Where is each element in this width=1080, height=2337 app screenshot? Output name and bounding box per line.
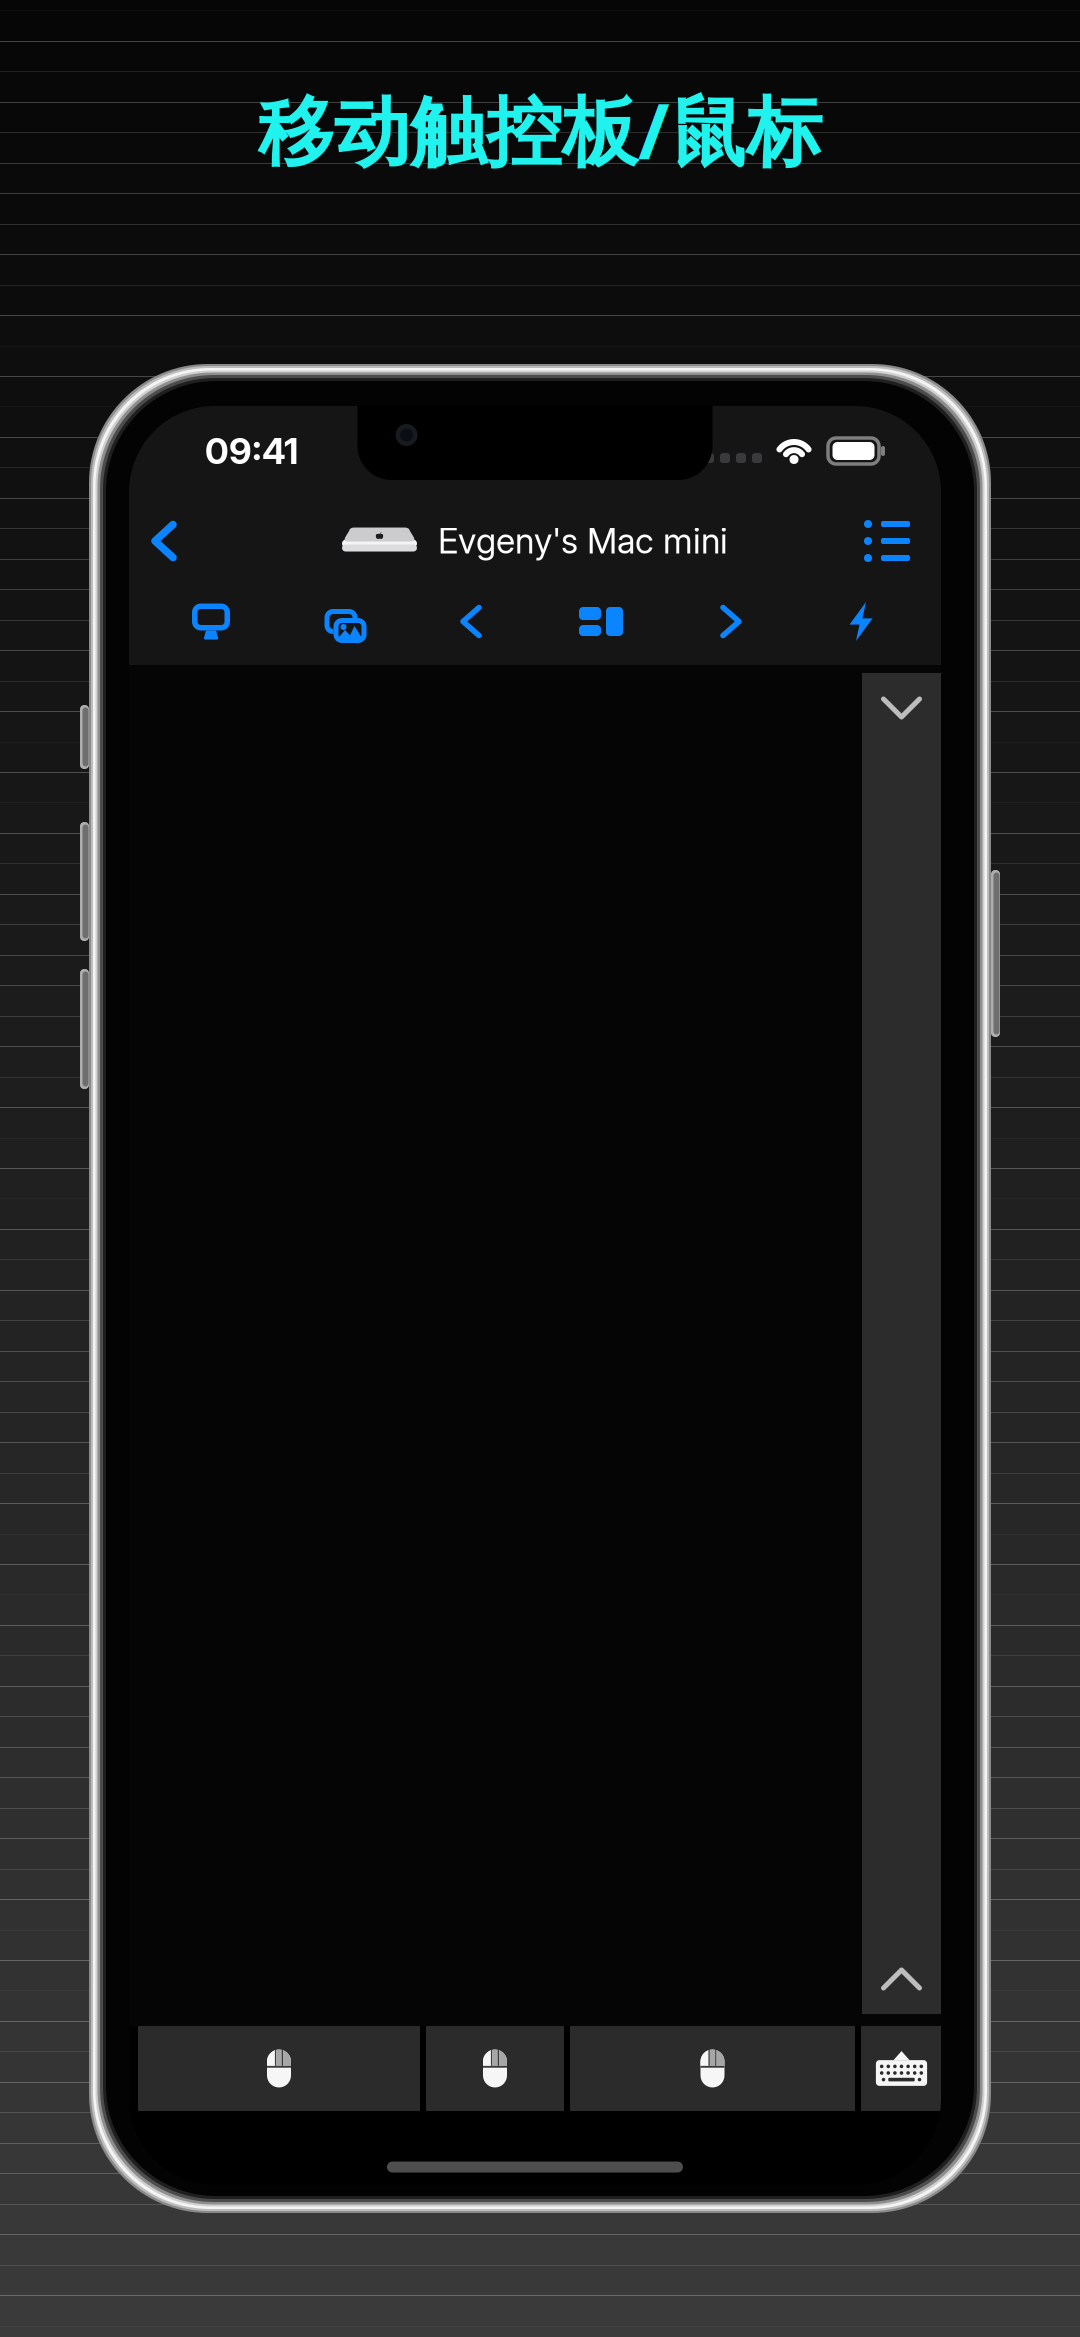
- button[interactable]: Scroll: [862, 673, 941, 2014]
- staticText: 移动触控板/鼠标: [258, 78, 822, 181]
- button[interactable]: Screens: [276, 578, 406, 665]
- button[interactable]: Displays: [146, 578, 276, 665]
- staticText: 09:41: [205, 429, 298, 473]
- button[interactable]: Evgeny's Mac mini: [342, 504, 728, 578]
- staticText: Evgeny's Mac mini: [438, 520, 728, 562]
- button[interactable]: Middle click: [426, 2026, 564, 2111]
- button[interactable]: Previous display: [406, 578, 536, 665]
- button[interactable]: Back: [133, 504, 195, 578]
- button[interactable]: Quick actions: [796, 578, 926, 665]
- button[interactable]: Layout: [536, 578, 666, 665]
- button[interactable]: Sessions: [847, 504, 927, 578]
- button[interactable]: Right click: [570, 2026, 855, 2111]
- button[interactable]: Left click: [138, 2026, 420, 2111]
- button[interactable]: Next display: [666, 578, 796, 665]
- button[interactable]: Keyboard: [861, 2026, 942, 2111]
